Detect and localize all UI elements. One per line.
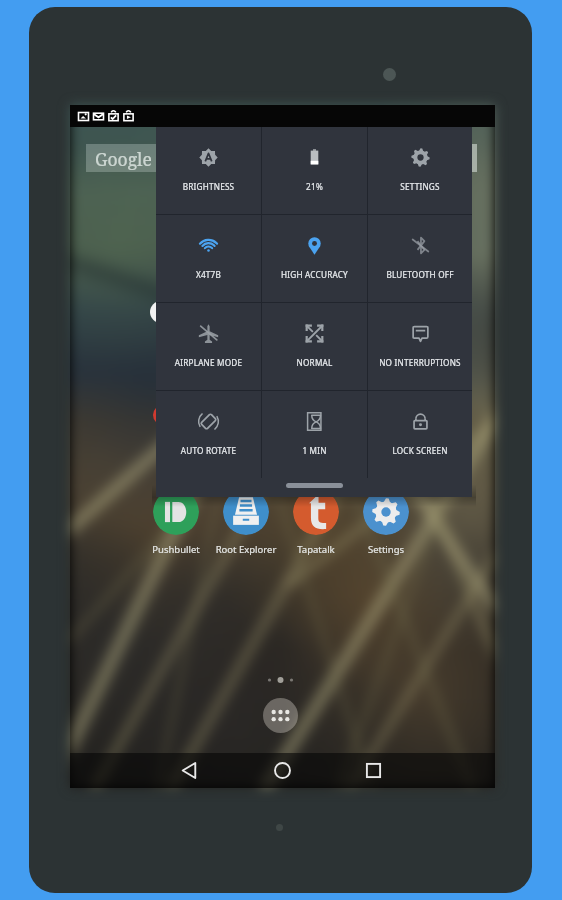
button[interactable]: Root Explorer	[211, 489, 281, 561]
staticText: SETTINGS	[368, 181, 472, 192]
staticText: HIGH ACCURACY	[262, 269, 367, 280]
staticText: Pushbullet	[141, 543, 211, 556]
staticText: BRIGHTNESS	[156, 181, 261, 192]
button[interactable]: BRIGHTNESS	[156, 127, 261, 214]
staticText: 21%	[262, 181, 367, 192]
button[interactable]: Recents	[355, 753, 391, 788]
button[interactable]: Settings	[351, 489, 421, 561]
staticText: NORMAL	[262, 357, 367, 368]
staticText: Settings	[351, 543, 421, 556]
staticText: NO INTERRUPTIONS	[368, 357, 472, 368]
staticText: X4T7B	[156, 269, 261, 280]
button[interactable]: Home	[264, 753, 300, 788]
staticText: AIRPLANE MODE	[156, 357, 261, 368]
button[interactable]: HIGH ACCURACY	[262, 215, 367, 302]
button[interactable]: LOCK SCREEN	[368, 391, 472, 478]
button[interactable]: 21%	[262, 127, 367, 214]
button[interactable]: AUTO ROTATE	[156, 391, 261, 478]
button[interactable]: Apps	[263, 698, 298, 733]
button[interactable]: Tapatalk	[281, 489, 351, 561]
button[interactable]: BLUETOOTH OFF	[368, 215, 472, 302]
button[interactable]: X4T7B	[156, 215, 261, 302]
staticText: LOCK SCREEN	[368, 445, 472, 456]
button[interactable]: SETTINGS	[368, 127, 472, 214]
staticText: AUTO ROTATE	[156, 445, 261, 456]
button[interactable]: Pushbullet	[141, 489, 211, 561]
button[interactable]: NORMAL	[262, 303, 367, 390]
button[interactable]: NO INTERRUPTIONS	[368, 303, 472, 390]
staticText: Tapatalk	[281, 543, 351, 556]
staticText: Root Explorer	[211, 543, 281, 556]
button[interactable]: Back	[171, 753, 207, 788]
button[interactable]: AIRPLANE MODE	[156, 303, 261, 390]
staticText: Google	[95, 147, 152, 171]
button[interactable]: Google search	[86, 144, 286, 172]
staticText: BLUETOOTH OFF	[368, 269, 472, 280]
staticText: 1 MIN	[262, 445, 367, 456]
button[interactable]: 1 MIN	[262, 391, 367, 478]
